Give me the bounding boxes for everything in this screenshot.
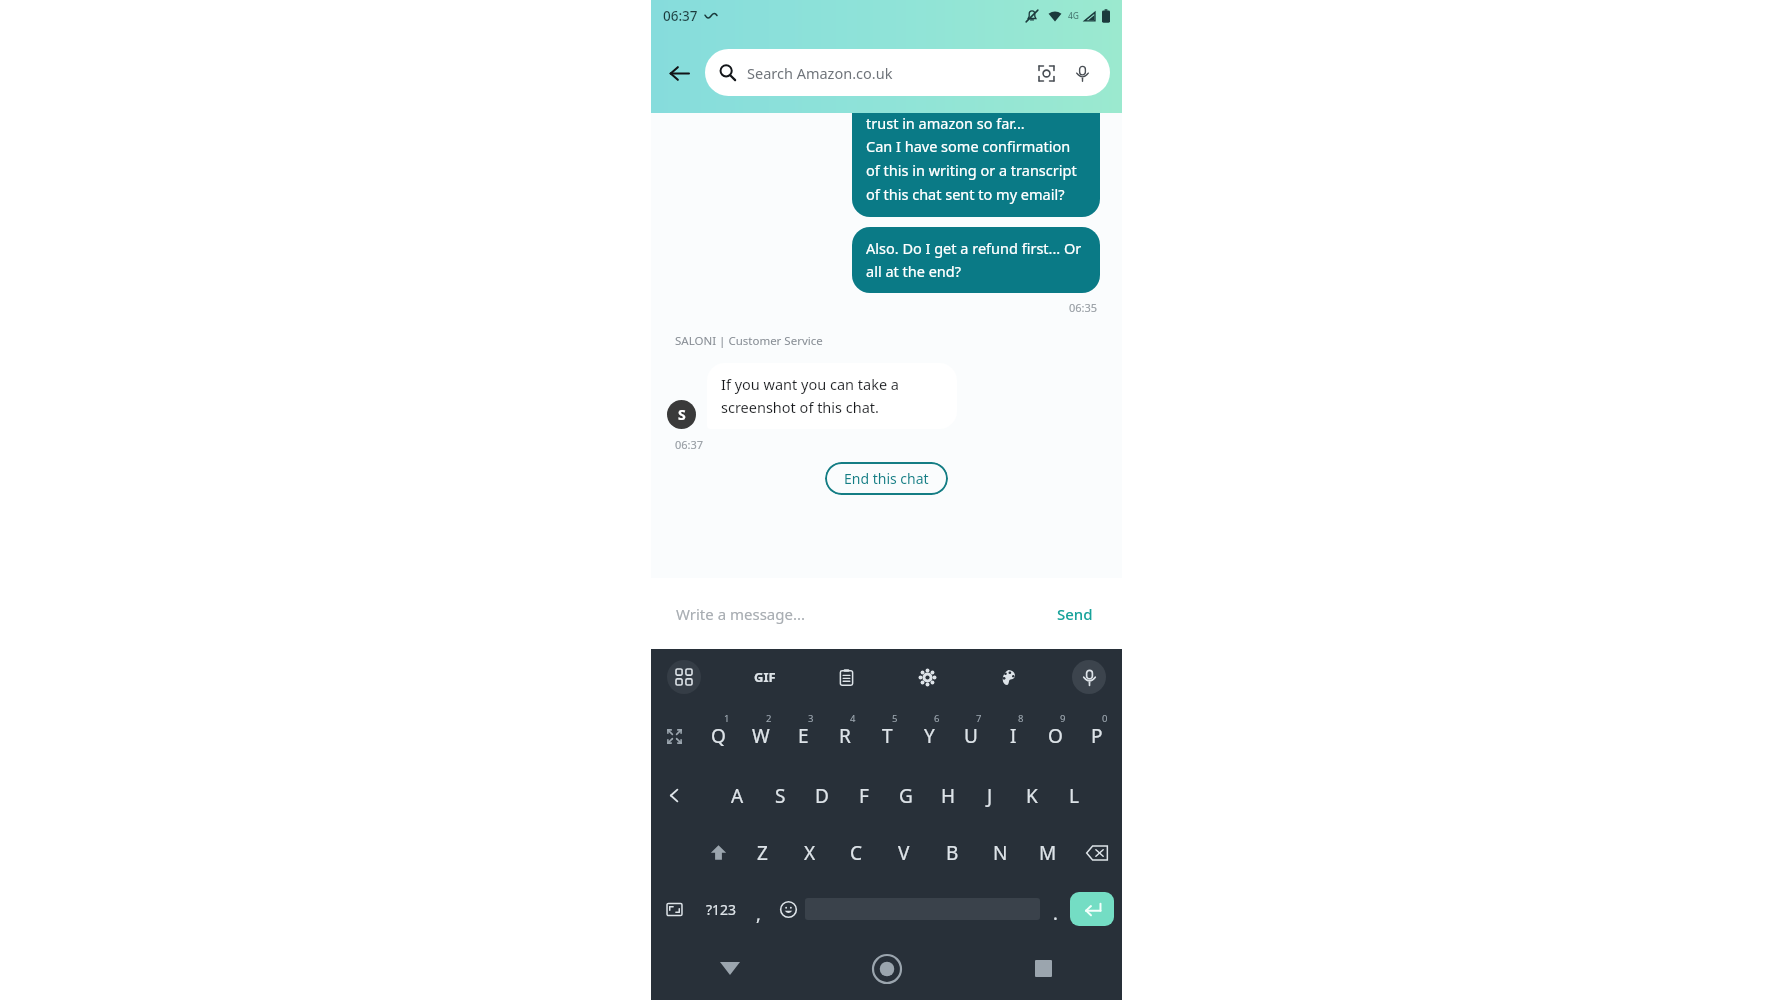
staticText: M [1039,840,1057,866]
button[interactable]: Write a message... [676,604,1053,624]
staticText: V [898,840,910,866]
button[interactable]: Hide keyboard [651,937,808,1000]
button[interactable]: T [866,705,908,767]
button[interactable]: L [1053,767,1095,824]
button[interactable]: Scan with camera [1032,59,1060,87]
button[interactable]: B [928,824,976,881]
staticText: 1 [724,712,730,725]
button[interactable]: Recents [965,937,1122,1000]
button[interactable]: P [1076,705,1118,767]
staticText: U [964,723,978,749]
staticText: T [882,723,893,749]
button[interactable]: Also. Do I get a refund first... Or all … [852,227,1100,293]
button[interactable]: Floating keyboard [651,881,697,937]
button[interactable]: Shift [697,824,739,881]
staticText: End this chat [844,469,929,488]
staticText: R [839,723,851,749]
staticText: . [1053,901,1058,926]
button[interactable]: ?123 [697,881,745,937]
button[interactable]: G [885,767,927,824]
staticText: X [804,840,816,866]
staticText: E [798,723,809,749]
staticText: trust in amazon so far... Can I have som… [866,113,1086,205]
button[interactable]: H [927,767,969,824]
button[interactable]: D [801,767,843,824]
button[interactable]: Themes [991,660,1025,694]
button[interactable]: Toolbox [667,660,701,694]
button[interactable]: Clipboard [829,660,863,694]
button[interactable]: Send [1053,598,1097,630]
button[interactable]: M [1024,824,1072,881]
button[interactable]: F [843,767,885,824]
button[interactable]: K [1011,767,1053,824]
button[interactable]: Y [908,705,950,767]
button[interactable]: . [1040,881,1070,937]
staticText: S [678,405,686,424]
button[interactable]: Settings [910,660,944,694]
staticText: Send [1057,604,1093,624]
staticText: 0 [1102,712,1108,725]
staticText: N [993,840,1008,866]
button[interactable]: Back [659,53,699,93]
button[interactable]: Backspace [1072,824,1122,881]
button[interactable]: N [976,824,1024,881]
staticText: Write a message... [676,604,805,624]
button[interactable]: trust in amazon so far... Can I have som… [852,113,1100,217]
staticText: F [859,783,869,809]
staticText: P [1091,723,1103,749]
button[interactable]: GIF [748,660,782,694]
button[interactable]: U [950,705,992,767]
staticText: GIF [754,668,776,686]
button[interactable]: R [824,705,866,767]
staticText: Z [757,840,768,866]
button[interactable]: Previous [651,767,697,824]
staticText: Y [924,723,935,749]
staticText: 06:37 [663,7,698,25]
button[interactable]: E [782,705,824,767]
staticText: 2 [766,712,772,725]
staticText: G [899,783,913,809]
staticText: C [850,840,863,866]
staticText: 4 [850,712,856,725]
staticText: 7 [976,712,982,725]
staticText: If you want you can take a screenshot of… [721,374,943,418]
staticText: J [987,783,993,809]
button[interactable]: W [740,705,782,767]
button[interactable]: Resize keyboard [651,705,697,767]
staticText: H [941,783,956,809]
button[interactable]: Z [739,824,786,881]
button[interactable]: X [786,824,833,881]
button[interactable]: J [969,767,1011,824]
staticText: Q [711,723,726,749]
staticText: 4G [1068,10,1080,22]
button[interactable]: Voice search [1068,59,1096,87]
staticText: D [815,783,829,809]
button[interactable]: If you want you can take a screenshot of… [707,363,957,429]
button[interactable]: Q [697,705,740,767]
staticText: Search Amazon.co.uk [747,63,893,83]
button[interactable]: Search Amazon.co.uk [705,49,1110,96]
button[interactable]: O [1034,705,1076,767]
staticText: I [1010,723,1017,749]
staticText: A [731,783,744,809]
staticText: 3 [808,712,814,725]
staticText: 9 [1060,712,1066,725]
staticText: 5 [892,712,898,725]
button[interactable]: , [745,881,771,937]
button[interactable]: C [833,824,880,881]
staticText: L [1069,783,1079,809]
button[interactable]: Emoji [771,881,805,937]
button[interactable]: End this chat [825,462,948,495]
button[interactable]: A [716,767,759,824]
button[interactable]: V [880,824,928,881]
staticText: ?123 [706,900,737,919]
staticText: SALONI | Customer Service [675,333,823,349]
button[interactable]: S [759,767,801,824]
button[interactable]: Voice input [1072,660,1106,694]
button[interactable]: I [992,705,1034,767]
button[interactable]: Enter [1070,892,1114,926]
staticText: 8 [1018,712,1024,725]
staticText: 06:37 [675,437,704,452]
button[interactable]: Home [808,937,965,1000]
